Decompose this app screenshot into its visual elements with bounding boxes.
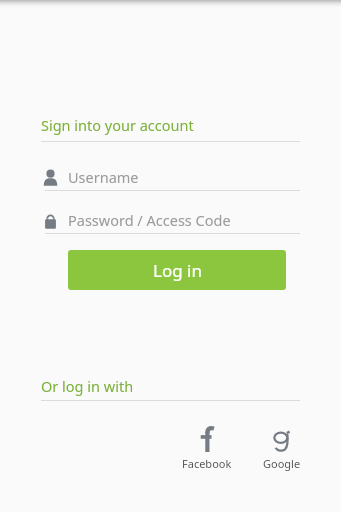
staticText: Sign into your account bbox=[41, 115, 194, 135]
staticText: Facebook bbox=[182, 456, 232, 471]
button[interactable]: Log in with Facebook bbox=[176, 425, 237, 471]
staticText: Log in bbox=[153, 259, 202, 282]
staticText: Password / Access Code bbox=[68, 210, 231, 230]
staticText: Google bbox=[263, 456, 301, 471]
staticText: Username bbox=[68, 167, 139, 187]
staticText: Or log in with bbox=[41, 376, 134, 396]
button[interactable]: Log in with Google bbox=[251, 425, 312, 471]
button[interactable]: Password / Access Code bbox=[41, 207, 300, 233]
button[interactable]: Username bbox=[41, 164, 300, 190]
button[interactable]: Log in bbox=[68, 250, 286, 290]
